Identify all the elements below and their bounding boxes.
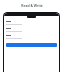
staticText: Read & Write [21,3,43,8]
button[interactable] [6,43,57,47]
